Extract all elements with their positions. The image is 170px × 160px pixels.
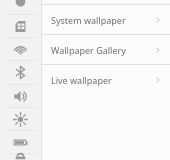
button[interactable]: Live wallpaper [42,65,170,94]
button[interactable]: Brightness [0,108,41,130]
staticText: System wallpaper [51,14,126,26]
button[interactable]: Security [0,154,41,160]
button[interactable]: Data usage [0,0,41,14]
button[interactable]: Wi-Fi [0,38,41,60]
button[interactable]: Sound [0,85,41,107]
staticText: Live wallpaper [51,74,112,86]
button[interactable]: SIM cards [0,15,41,37]
button[interactable]: Wallpaper Gallery [42,35,170,64]
button[interactable]: Bluetooth [0,61,41,84]
staticText: Wallpaper Gallery [51,44,126,56]
button[interactable]: System wallpaper [42,5,170,34]
button[interactable]: Battery [0,131,41,153]
